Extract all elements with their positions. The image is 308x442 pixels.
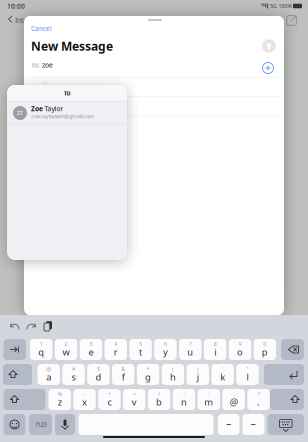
button[interactable]: j [187,364,209,385]
button[interactable]: l [236,364,259,385]
button[interactable]: Add contact [262,62,274,74]
staticText: $ [97,365,100,373]
button[interactable]: d [87,364,110,385]
staticText: " [246,365,248,373]
staticText: d [95,371,101,383]
button[interactable]: Return [264,364,304,385]
staticText: l [246,371,248,383]
button[interactable]: Space [78,414,213,435]
staticText: 5 [139,340,142,348]
staticText: m [204,396,213,408]
staticText: zoe.taylor.wm@gmail.com [31,112,94,120]
button[interactable]: e [80,339,102,360]
staticText: g [145,371,151,383]
button[interactable]: Paste [41,318,55,332]
staticText: r [114,346,118,358]
button[interactable]: Delete [281,339,304,360]
staticText: * [147,365,150,373]
button[interactable]: a [37,364,60,385]
button[interactable]: Shift [3,389,45,410]
button[interactable]: w [55,339,77,360]
staticText: i [214,346,216,358]
button[interactable]: i [204,339,226,360]
button[interactable]: m [198,389,220,410]
button[interactable]: .?123 [29,414,52,435]
button[interactable]: Back to Inbox [5,14,39,24]
staticText: Zoe [31,104,43,113]
staticText: zoe [42,61,53,69]
staticText: To [63,89,70,97]
staticText: 6 [164,340,167,348]
button[interactable]: . [247,389,270,410]
button[interactable]: h [162,364,184,385]
button[interactable]: Emoji [3,414,25,435]
button[interactable]: y [154,339,177,360]
button[interactable]: x [73,389,96,410]
staticText: New Message [31,38,113,54]
staticText: Cancel [31,24,52,33]
button[interactable]: Hide Keyboard [267,414,304,435]
button[interactable]: z [48,389,71,410]
button[interactable]: f [112,364,134,385]
staticText: w [62,346,69,358]
button[interactable]: ZT [7,101,127,124]
button[interactable]: b [148,389,170,410]
staticText: - [83,390,85,398]
staticText: e [88,346,93,358]
staticText: v [132,396,137,408]
button[interactable]: Compose [285,14,298,27]
staticText: ; [183,390,184,398]
staticText: u [187,346,193,358]
button[interactable]: @ [222,389,245,410]
button[interactable]: Tab [3,339,26,360]
staticText: To: [31,61,40,69]
button[interactable]: p [254,339,276,360]
staticText: 7 [189,340,192,348]
button[interactable]: Cancel [31,24,71,33]
button[interactable]: Redo [24,318,38,332]
staticText: = [133,390,136,398]
staticText: 2 [64,340,67,348]
button[interactable]: Send [262,39,276,53]
button[interactable]: g [137,364,159,385]
button[interactable]: k [211,364,234,385]
button[interactable]: Undo [8,318,22,332]
staticText: ZT [17,109,23,117]
button[interactable]: r [105,339,127,360]
staticText: c [107,396,111,408]
staticText: + [108,390,111,398]
staticText: . [257,396,260,408]
button[interactable]: Caps Lock [3,364,32,385]
button[interactable]: q [30,339,52,360]
button[interactable]: n [173,389,195,410]
button[interactable]: Hyphen [218,414,239,435]
staticText: s [71,371,75,383]
staticText: Inbox [15,16,33,25]
button[interactable]: t [129,339,152,360]
staticText: 0 [263,340,266,348]
staticText: 1 [40,340,43,348]
button[interactable]: Dash [242,414,264,435]
staticText: ) [197,365,199,373]
staticText: x [82,396,87,408]
staticText: Taylor [44,104,63,113]
button[interactable]: o [229,339,251,360]
staticText: / [158,390,160,398]
staticText: y [163,346,168,358]
button[interactable]: s [62,364,85,385]
button[interactable]: Dictate [55,414,75,435]
button[interactable]: Shift [270,389,304,410]
button[interactable]: v [123,389,145,410]
staticText: b [156,396,162,408]
button[interactable]: u [179,339,201,360]
staticText: % [58,390,62,398]
staticText: p [262,346,268,358]
staticText: o [237,346,243,358]
button[interactable]: c [98,389,121,410]
staticText: @ [230,396,238,408]
staticText: 9 [238,340,241,348]
staticText: f [122,371,125,383]
staticText: j [197,371,199,383]
staticText: h [170,371,176,383]
staticText: q [38,346,44,358]
